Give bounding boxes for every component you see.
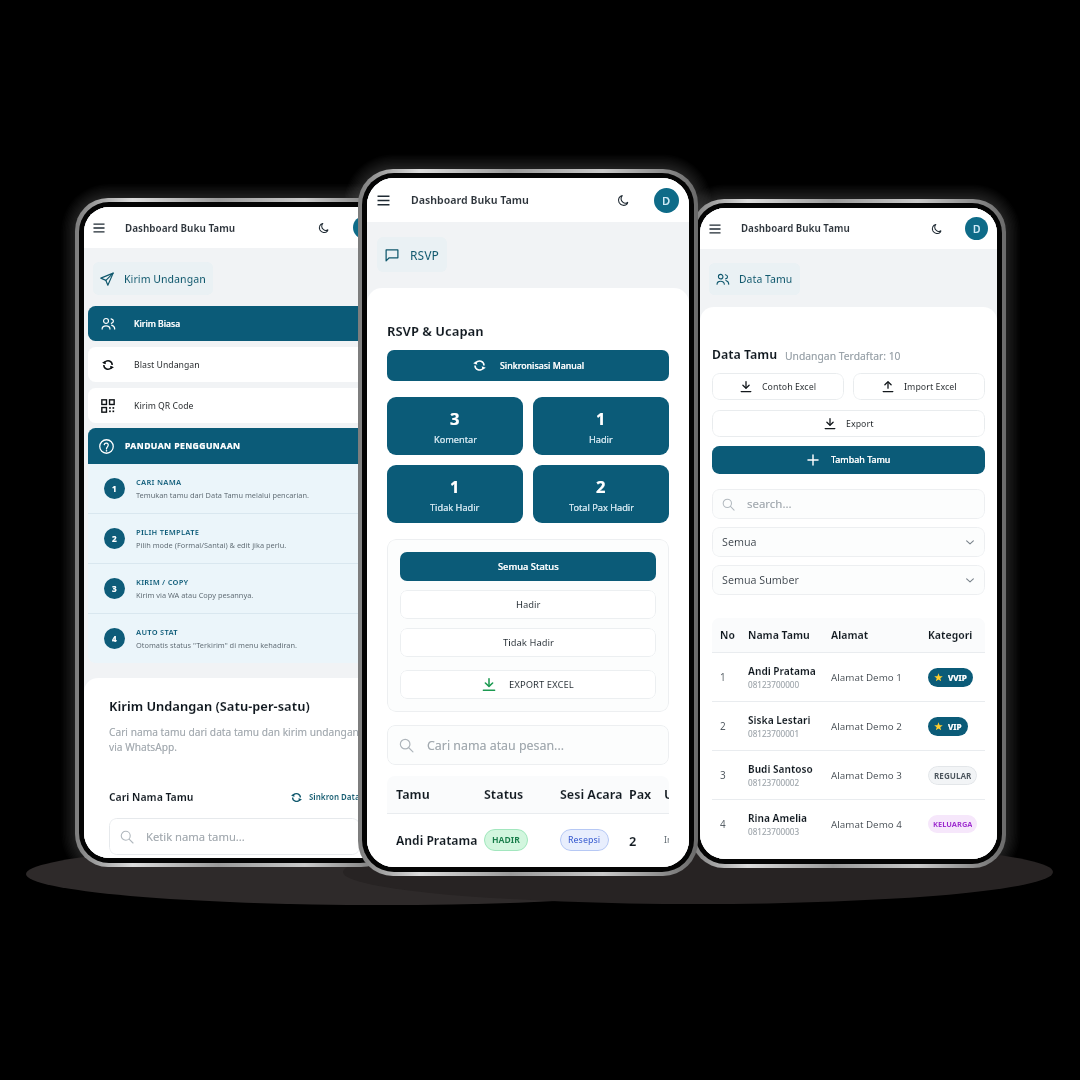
staticText: 3 xyxy=(720,768,748,782)
button[interactable]: Export xyxy=(712,410,985,437)
staticText: VVIP xyxy=(948,672,967,683)
staticText: Sinkron Data xyxy=(309,792,360,803)
button[interactable]: 1 xyxy=(712,653,985,701)
staticText: No xyxy=(720,628,748,642)
staticText: RSVP xyxy=(410,247,439,263)
button[interactable]: Open navigation menu xyxy=(707,221,723,237)
button[interactable]: Account xyxy=(353,216,376,239)
button[interactable]: Kirim Biasa xyxy=(88,306,381,341)
staticText: 2 xyxy=(629,832,664,849)
staticText: Dashboard Buku Tamu xyxy=(125,221,236,234)
staticText: 08123700001 xyxy=(748,728,800,739)
staticText: PANDUAN PENGGUNAAN xyxy=(125,440,241,452)
staticText: Alamat Demo 1 xyxy=(831,671,928,684)
button[interactable]: 2 xyxy=(712,702,985,750)
button[interactable]: Toggle dark mode xyxy=(316,220,332,236)
staticText: Nama Tamu xyxy=(748,628,831,642)
button[interactable]: RSVP xyxy=(377,237,447,272)
button[interactable]: Cari nama atau pesan... xyxy=(387,725,669,765)
button[interactable]: 1 xyxy=(387,465,523,523)
staticText: 2 xyxy=(720,719,748,733)
staticText: Tidak Hadir xyxy=(430,501,480,514)
staticText: 08123700002 xyxy=(748,777,800,788)
button[interactable]: 3 xyxy=(712,751,985,799)
staticText: Dashboard Buku Tamu xyxy=(411,193,529,207)
staticText: Pilih mode (Formal/Santai) & edit jika p… xyxy=(136,540,287,550)
button[interactable]: 3 xyxy=(88,564,381,613)
staticText: Semua Status xyxy=(498,560,559,573)
staticText: 4 xyxy=(112,633,117,644)
button[interactable]: Kirim Undangan xyxy=(93,262,213,295)
button[interactable]: PANDUAN PENGGUNAAN xyxy=(88,428,381,464)
staticText: Cari nama tamu dari data tamu dan kirim … xyxy=(109,725,360,754)
button[interactable]: Tambah Tamu xyxy=(712,446,985,474)
button[interactable]: 2 xyxy=(533,465,669,523)
button[interactable]: Account xyxy=(965,217,988,240)
staticText: Otomatis status "Terkirim" di menu kehad… xyxy=(136,640,298,650)
staticText: Tidak Hadir xyxy=(503,636,554,649)
button[interactable]: 4 xyxy=(88,614,381,663)
staticText: Alamat Demo 3 xyxy=(831,769,928,782)
button[interactable]: Account xyxy=(654,188,679,213)
button[interactable]: EXPORT EXCEL xyxy=(400,670,656,699)
button[interactable]: 3 xyxy=(387,397,523,455)
staticText: Undangan Terdaftar: 10 xyxy=(785,349,901,363)
staticText: 2 xyxy=(596,475,606,497)
staticText: Andi Pratama xyxy=(748,664,816,678)
staticText: HADIR xyxy=(492,834,520,846)
staticText: 1 xyxy=(450,475,460,497)
staticText: Semua xyxy=(722,535,757,550)
staticText: KIRIM / COPY xyxy=(136,577,189,587)
button[interactable]: Tidak Hadir xyxy=(400,628,656,657)
staticText: 1 xyxy=(720,670,748,684)
staticText: CARI NAMA xyxy=(136,477,182,487)
staticText: 3 xyxy=(112,583,117,594)
staticText: Siska Lestari xyxy=(748,713,811,727)
staticText: Cari Nama Tamu xyxy=(109,790,194,804)
button[interactable]: Kirim QR Code xyxy=(88,388,381,423)
staticText: Kategori xyxy=(928,628,977,642)
button[interactable]: Contoh Excel xyxy=(712,373,844,400)
staticText: Insta xyxy=(664,834,669,846)
button[interactable]: Ketik nama tamu... xyxy=(109,818,360,855)
button[interactable]: Hadir xyxy=(400,590,656,619)
staticText: Semua Sumber xyxy=(722,573,799,588)
staticText: Tambah Tamu xyxy=(831,454,891,466)
staticText: KELUARGA xyxy=(933,819,972,829)
button[interactable]: Open navigation menu xyxy=(91,220,107,236)
staticText: 3 xyxy=(450,407,460,429)
staticText: Alamat Demo 2 xyxy=(831,720,928,733)
button[interactable]: Toggle dark mode xyxy=(615,192,632,209)
button[interactable]: Data Tamu xyxy=(709,263,800,295)
staticText: Hadir xyxy=(516,598,541,611)
button[interactable]: search... xyxy=(712,489,985,519)
staticText: Import Excel xyxy=(904,381,957,393)
button[interactable]: 4 xyxy=(712,800,985,848)
staticText: Sinkronisasi Manual xyxy=(500,360,585,372)
staticText: RSVP & Ucapan xyxy=(387,322,484,340)
button[interactable]: Semua xyxy=(712,527,985,557)
button[interactable]: 1 xyxy=(533,397,669,455)
staticText: D xyxy=(973,222,981,236)
button[interactable]: Andi Pratama xyxy=(387,814,669,866)
button[interactable]: Toggle dark mode xyxy=(929,221,945,237)
staticText: Kirim Biasa xyxy=(134,318,181,330)
staticText: REGULAR xyxy=(934,770,971,781)
staticText: Sesi Acara xyxy=(560,786,629,803)
staticText: Blast Undangan xyxy=(134,359,200,371)
button[interactable]: Import Excel xyxy=(853,373,985,400)
button[interactable]: Blast Undangan xyxy=(88,347,381,382)
button[interactable]: Sinkron Data xyxy=(290,791,360,804)
button[interactable]: 1 xyxy=(88,464,381,513)
button[interactable]: Semua Status xyxy=(400,552,656,581)
button[interactable]: Semua Sumber xyxy=(712,565,985,595)
staticText: Status xyxy=(484,786,560,803)
button[interactable]: 2 xyxy=(88,514,381,563)
button[interactable]: Sinkronisasi Manual xyxy=(387,350,669,381)
staticText: EXPORT EXCEL xyxy=(509,678,574,691)
staticText: Andi Pratama xyxy=(396,832,484,848)
staticText: Temukan tamu dari Data Tamu melalui penc… xyxy=(136,490,310,500)
staticText: Komentar xyxy=(434,433,477,446)
staticText: Rina Amelia xyxy=(748,811,808,825)
button[interactable]: Open navigation menu xyxy=(375,192,392,209)
